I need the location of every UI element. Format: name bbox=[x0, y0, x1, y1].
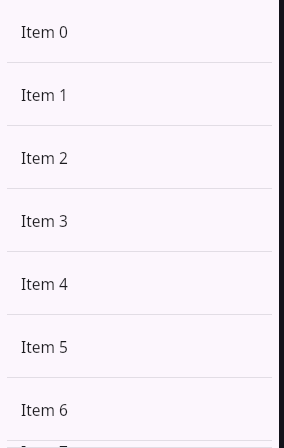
button[interactable]: Item 5 bbox=[0, 315, 284, 378]
button[interactable]: Item 7 bbox=[0, 441, 284, 448]
staticText: Item 3 bbox=[21, 210, 68, 231]
button[interactable]: Item 0 bbox=[0, 0, 284, 63]
staticText: Item 2 bbox=[21, 147, 68, 168]
button[interactable]: Item 6 bbox=[0, 378, 284, 441]
staticText: Item 7 bbox=[21, 441, 68, 447]
staticText: Item 1 bbox=[21, 84, 68, 105]
staticText: Item 6 bbox=[21, 399, 68, 420]
button[interactable]: Item 3 bbox=[0, 189, 284, 252]
staticText: Item 4 bbox=[21, 273, 68, 294]
button[interactable]: Item 2 bbox=[0, 126, 284, 189]
staticText: Item 5 bbox=[21, 336, 68, 357]
button[interactable]: Item 4 bbox=[0, 252, 284, 315]
button[interactable]: Item 1 bbox=[0, 63, 284, 126]
staticText: Item 0 bbox=[21, 21, 68, 42]
